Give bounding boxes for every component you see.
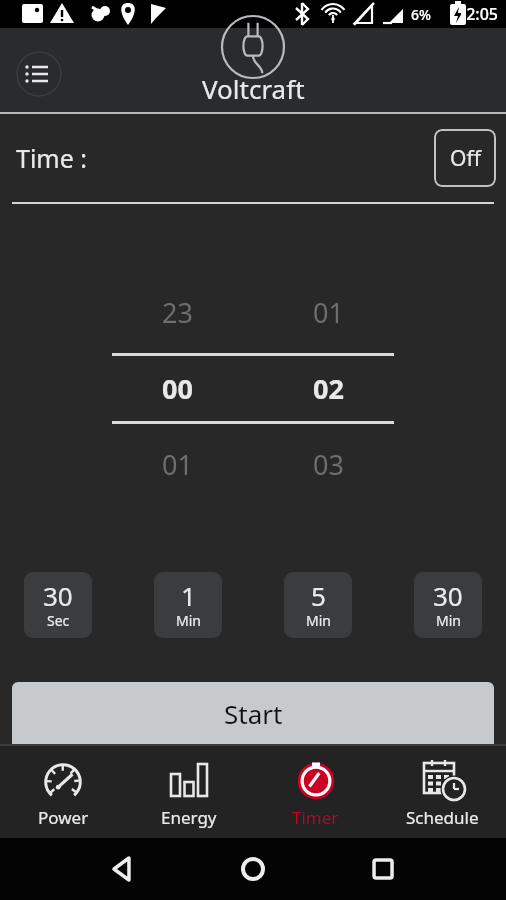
staticText: Sec xyxy=(47,611,70,630)
button[interactable]: Timer xyxy=(252,746,379,838)
button[interactable]: 01 xyxy=(263,294,394,331)
staticText: 01 xyxy=(313,294,344,331)
staticText: 5 xyxy=(311,578,326,613)
staticText: Min xyxy=(176,611,201,630)
staticText: 6% xyxy=(411,5,431,24)
staticText: 30 xyxy=(43,578,73,613)
staticText: 03 xyxy=(313,446,344,483)
staticText: Start xyxy=(224,696,283,731)
button[interactable]: 30 xyxy=(24,572,92,638)
staticText: 00 xyxy=(162,370,193,407)
staticText: Min xyxy=(436,611,461,630)
button[interactable]: Start xyxy=(12,682,494,744)
staticText: Energy xyxy=(161,806,217,829)
staticText: Voltcraft xyxy=(202,71,305,106)
button[interactable]: Schedule xyxy=(379,746,506,838)
button[interactable]: 5 xyxy=(284,572,352,638)
button[interactable]: Off xyxy=(434,129,496,187)
staticText: 30 xyxy=(433,578,463,613)
staticText: 12:05 xyxy=(457,3,498,25)
staticText: 1 xyxy=(181,578,196,613)
staticText: Power xyxy=(38,806,89,829)
button[interactable]: Power xyxy=(0,746,126,838)
staticText: Timer xyxy=(292,806,339,829)
button[interactable]: 23 xyxy=(112,294,243,331)
button[interactable]: 03 xyxy=(263,446,394,483)
staticText: Off xyxy=(450,144,481,173)
staticText: 23 xyxy=(162,294,193,331)
button[interactable]: 01 xyxy=(112,446,243,483)
staticText: Min xyxy=(306,611,331,630)
staticText: Schedule xyxy=(406,806,479,829)
button[interactable]: Energy xyxy=(126,746,252,838)
button[interactable]: 02 xyxy=(263,370,394,407)
button[interactable]: 00 xyxy=(112,370,243,407)
staticText: Time : xyxy=(16,141,88,175)
button[interactable]: 30 xyxy=(414,572,482,638)
button[interactable]: Menu xyxy=(16,51,62,97)
staticText: 02 xyxy=(313,370,344,407)
staticText: 01 xyxy=(162,446,193,483)
button[interactable]: 1 xyxy=(154,572,222,638)
